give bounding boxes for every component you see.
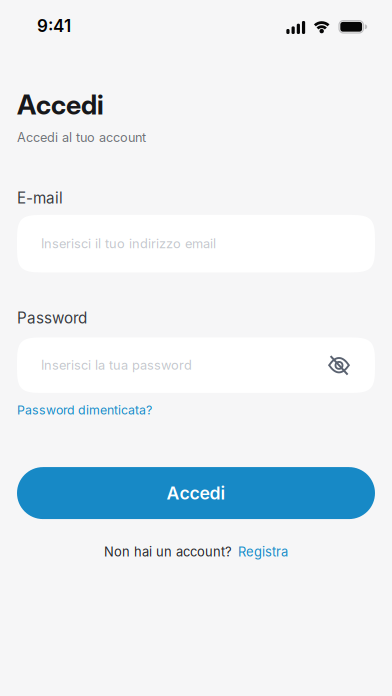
staticText: Non hai un account? bbox=[104, 544, 232, 559]
staticText: Password dimenticata? bbox=[17, 403, 152, 417]
staticText: Inserisci la tua password bbox=[41, 358, 192, 373]
button[interactable]: Registra bbox=[238, 544, 288, 559]
button[interactable]: Mostra password bbox=[328, 354, 375, 376]
staticText: E-mail bbox=[17, 189, 63, 207]
staticText: Accedi bbox=[166, 483, 225, 503]
staticText: Password bbox=[17, 309, 87, 327]
button[interactable]: Inserisci la tua password bbox=[17, 337, 375, 393]
staticText: 9:41 bbox=[37, 16, 71, 36]
staticText: Accedi al tuo account bbox=[17, 130, 146, 145]
staticText: Registra bbox=[238, 544, 288, 559]
button[interactable]: Inserisci il tuo indirizzo email bbox=[17, 215, 375, 272]
staticText: Inserisci il tuo indirizzo email bbox=[41, 236, 216, 251]
staticText: Accedi bbox=[17, 89, 104, 121]
button[interactable]: Accedi bbox=[17, 467, 375, 519]
button[interactable]: Password dimenticata? bbox=[17, 403, 152, 417]
